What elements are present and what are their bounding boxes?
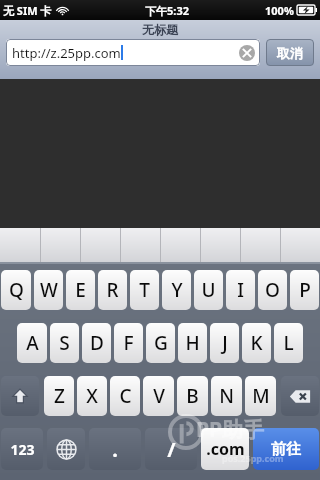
button[interactable]: E [66, 270, 95, 310]
staticText: 无 SIM 卡 [3, 3, 52, 18]
staticText: S [59, 330, 70, 356]
staticText: U [201, 277, 216, 303]
button[interactable] [121, 228, 160, 262]
button[interactable]: . [89, 428, 141, 470]
staticText: A [26, 330, 39, 356]
staticText: P [299, 277, 311, 303]
staticText: R [106, 277, 119, 303]
button[interactable]: http://z.25pp.com [6, 39, 260, 66]
button[interactable] [161, 228, 200, 262]
button[interactable]: U [194, 270, 223, 310]
button[interactable]: 取消 [266, 39, 314, 66]
staticText: 前往 [271, 440, 301, 459]
staticText: F [123, 330, 134, 356]
staticText: 下午5:32 [145, 3, 189, 18]
staticText: http://z.25pp.com [12, 44, 121, 62]
button[interactable]: G [146, 323, 175, 363]
button[interactable]: D [82, 323, 111, 363]
button[interactable]: Delete [281, 376, 319, 416]
staticText: Q [9, 277, 24, 303]
button[interactable] [0, 228, 40, 262]
staticText: PP助手 [196, 415, 265, 444]
staticText: I [237, 277, 244, 303]
button[interactable]: W [34, 270, 63, 310]
staticText: T [139, 277, 150, 303]
button[interactable]: Next keyboard [47, 428, 85, 470]
button[interactable]: N [211, 376, 242, 416]
button[interactable]: T [130, 270, 159, 310]
button[interactable]: / [145, 428, 197, 470]
button[interactable]: F [114, 323, 143, 363]
button[interactable]: L [274, 323, 303, 363]
staticText: .com [206, 438, 245, 460]
button[interactable]: R [98, 270, 127, 310]
button[interactable]: K [242, 323, 271, 363]
button[interactable]: .com [201, 428, 249, 470]
button[interactable] [281, 228, 320, 262]
staticText: E [75, 277, 86, 303]
staticText: 取消 [277, 45, 303, 61]
button[interactable]: J [210, 323, 239, 363]
button[interactable]: 前往 [253, 428, 319, 470]
button[interactable] [241, 228, 280, 262]
button[interactable]: Shift [1, 376, 39, 416]
button[interactable] [41, 228, 80, 262]
button[interactable]: Clear [239, 45, 255, 61]
staticText: B [186, 383, 199, 409]
staticText: O [265, 277, 280, 303]
button[interactable] [201, 228, 240, 262]
button[interactable]: A [17, 323, 47, 363]
staticText: Y [171, 277, 183, 303]
staticText: Z [54, 383, 65, 409]
button[interactable]: P [290, 270, 319, 310]
staticText: 无标题 [142, 22, 178, 37]
staticText: 123 [10, 440, 35, 459]
staticText: C [119, 383, 132, 409]
staticText: N [219, 383, 234, 409]
button[interactable]: Y [162, 270, 191, 310]
button[interactable]: M [245, 376, 276, 416]
staticText: L [283, 330, 294, 356]
staticText: . [112, 436, 118, 463]
staticText: H [185, 330, 200, 356]
button[interactable]: I [226, 270, 255, 310]
button[interactable] [81, 228, 120, 262]
staticText: pos.25pp.com [222, 452, 284, 464]
button[interactable]: B [177, 376, 208, 416]
staticText: W [40, 277, 58, 303]
button[interactable]: V [143, 376, 174, 416]
staticText: 100% [265, 3, 294, 18]
button[interactable]: O [258, 270, 287, 310]
staticText: K [250, 330, 263, 356]
staticText: M [252, 383, 270, 409]
button[interactable]: S [50, 323, 79, 363]
button[interactable]: H [178, 323, 207, 363]
button[interactable]: 123 [1, 428, 43, 470]
staticText: G [154, 330, 168, 356]
staticText: X [86, 383, 98, 409]
staticText: J [222, 330, 228, 356]
button[interactable]: Z [44, 376, 74, 416]
staticText: D [90, 330, 104, 356]
staticText: / [167, 436, 176, 463]
button[interactable]: X [77, 376, 107, 416]
staticText: V [153, 383, 165, 409]
button[interactable]: C [110, 376, 140, 416]
button[interactable]: Q [1, 270, 31, 310]
